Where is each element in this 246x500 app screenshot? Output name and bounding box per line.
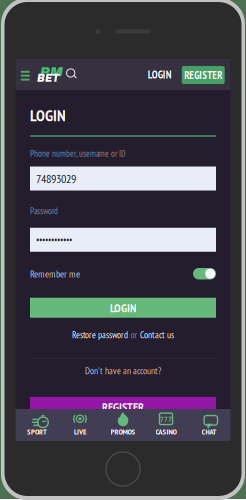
staticText: LIVE: [74, 426, 86, 437]
staticText: BET: [37, 73, 59, 84]
staticText: ••••••••••••: [36, 234, 72, 246]
staticText: CHAT: [201, 426, 216, 437]
staticText: Password: [30, 205, 58, 217]
button[interactable]: PROMOS: [101, 409, 144, 441]
staticText: Phone number, username or ID: [30, 148, 126, 159]
button[interactable]: 7: [144, 409, 187, 441]
staticText: 7: [160, 414, 164, 424]
staticText: PM: [40, 64, 63, 79]
button[interactable]: REGISTER: [182, 66, 225, 84]
button[interactable]: Search: [67, 69, 80, 82]
button[interactable]: Contact us: [140, 329, 174, 341]
staticText: Don't have an account?: [85, 365, 161, 377]
staticText: 7: [164, 414, 168, 424]
button[interactable]: SPORT: [15, 409, 58, 441]
staticText: Restore password: [72, 329, 128, 341]
staticText: CASINO: [155, 426, 176, 437]
button[interactable]: LOGIN: [144, 65, 176, 83]
staticText: LOGIN: [148, 68, 172, 81]
staticText: or: [130, 329, 137, 341]
button[interactable]: LIVE: [58, 409, 101, 441]
staticText: SPORT: [27, 426, 47, 437]
staticText: 74893029: [36, 171, 76, 186]
button[interactable]: CHAT: [187, 409, 230, 441]
staticText: PROMOS: [110, 426, 135, 437]
button[interactable]: REGISTER: [30, 397, 216, 417]
staticText: Contact us: [140, 329, 174, 341]
button[interactable]: Menu: [18, 67, 33, 84]
button[interactable]: LOGIN: [30, 298, 216, 318]
button[interactable]: Restore password: [72, 329, 128, 341]
staticText: REGISTER: [102, 399, 144, 415]
staticText: 7: [168, 414, 172, 424]
staticText: REGISTER: [184, 68, 222, 82]
staticText: LOGIN: [110, 300, 136, 315]
staticText: LOGIN: [30, 105, 66, 126]
button[interactable]: Remember me: [193, 268, 216, 280]
staticText: Remember me: [30, 267, 80, 280]
